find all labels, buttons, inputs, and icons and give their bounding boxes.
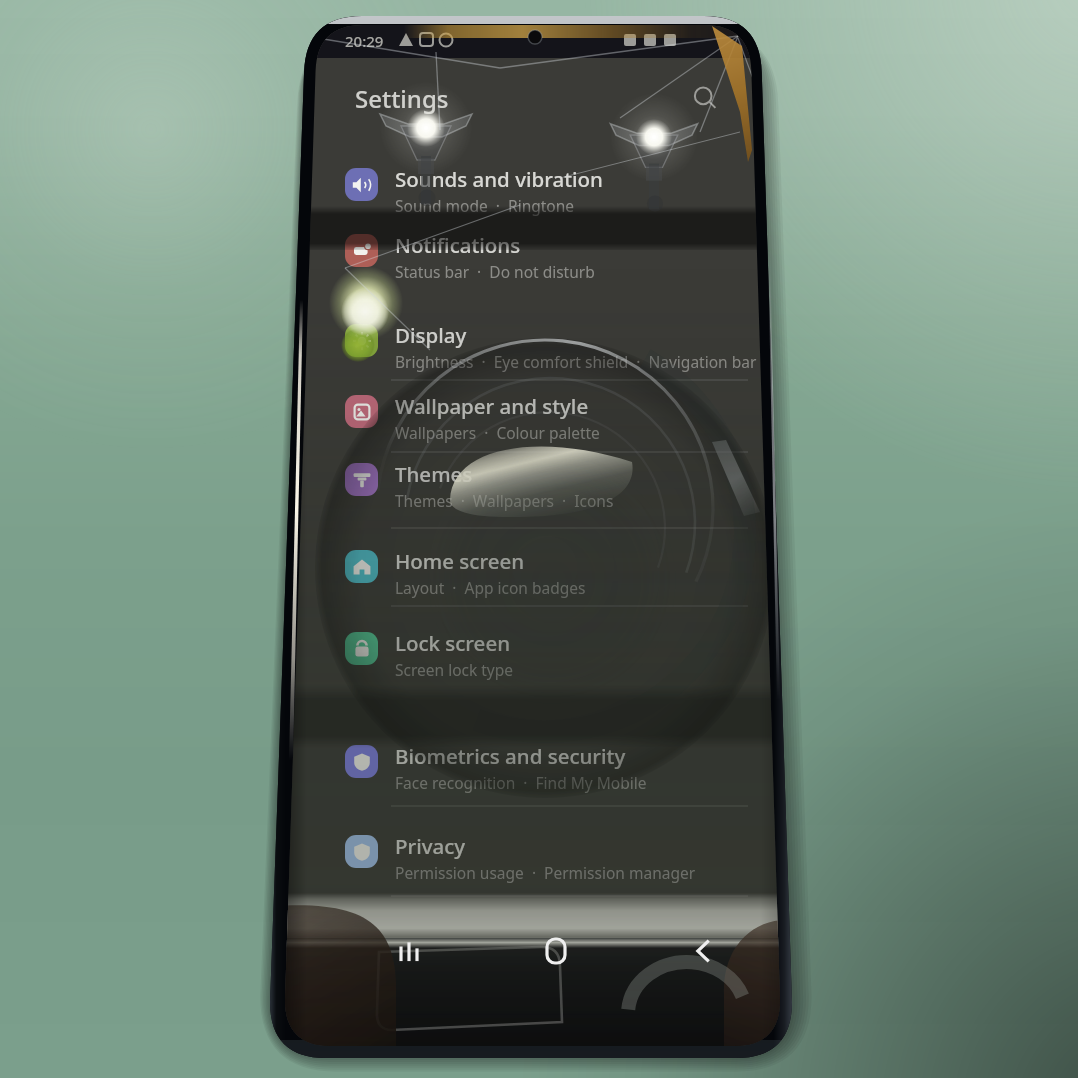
staticText: Display (395, 321, 467, 349)
staticText: Permission usage · Permission manager (395, 862, 696, 883)
button[interactable]: Biometrics and security (345, 735, 765, 799)
staticText: Sounds and vibration (395, 165, 603, 193)
button[interactable]: Lock screen (345, 622, 765, 686)
staticText: Settings (355, 82, 449, 115)
staticText: Privacy (395, 832, 466, 860)
button[interactable]: Sounds and vibration (345, 158, 765, 222)
button[interactable]: Notifications (345, 224, 765, 288)
button[interactable]: Search (687, 80, 723, 116)
staticText: Biometrics and security (395, 742, 626, 770)
staticText: Status bar · Do not disturb (395, 261, 595, 282)
staticText: Home screen (395, 547, 525, 575)
button[interactable]: Privacy (345, 825, 765, 889)
button[interactable]: Themes (345, 453, 765, 517)
staticText: Wallpapers · Colour palette (395, 422, 600, 443)
button[interactable]: Home screen (345, 540, 765, 604)
button[interactable]: Display (345, 314, 765, 378)
button[interactable]: Settings (355, 82, 449, 115)
staticText: Screen lock type (395, 659, 514, 680)
staticText: Sound mode · Ringtone (395, 195, 575, 216)
button[interactable]: Back (680, 928, 726, 974)
staticText: Themes · Wallpapers · Icons (395, 490, 614, 511)
staticText: Face recognition · Find My Mobile (395, 772, 647, 793)
staticText: Wallpaper and style (395, 392, 589, 420)
button[interactable]: Home (533, 928, 579, 974)
staticText: Notifications (395, 231, 521, 259)
staticText: Lock screen (395, 629, 511, 657)
staticText: 20:29 (345, 31, 384, 51)
staticText: Themes (395, 460, 473, 488)
button[interactable]: Recents (387, 929, 431, 973)
staticText: Brightness · Eye comfort shield · Naviga… (395, 351, 757, 372)
button[interactable]: Wallpaper and style (345, 385, 765, 449)
staticText: Layout · App icon badges (395, 577, 586, 598)
